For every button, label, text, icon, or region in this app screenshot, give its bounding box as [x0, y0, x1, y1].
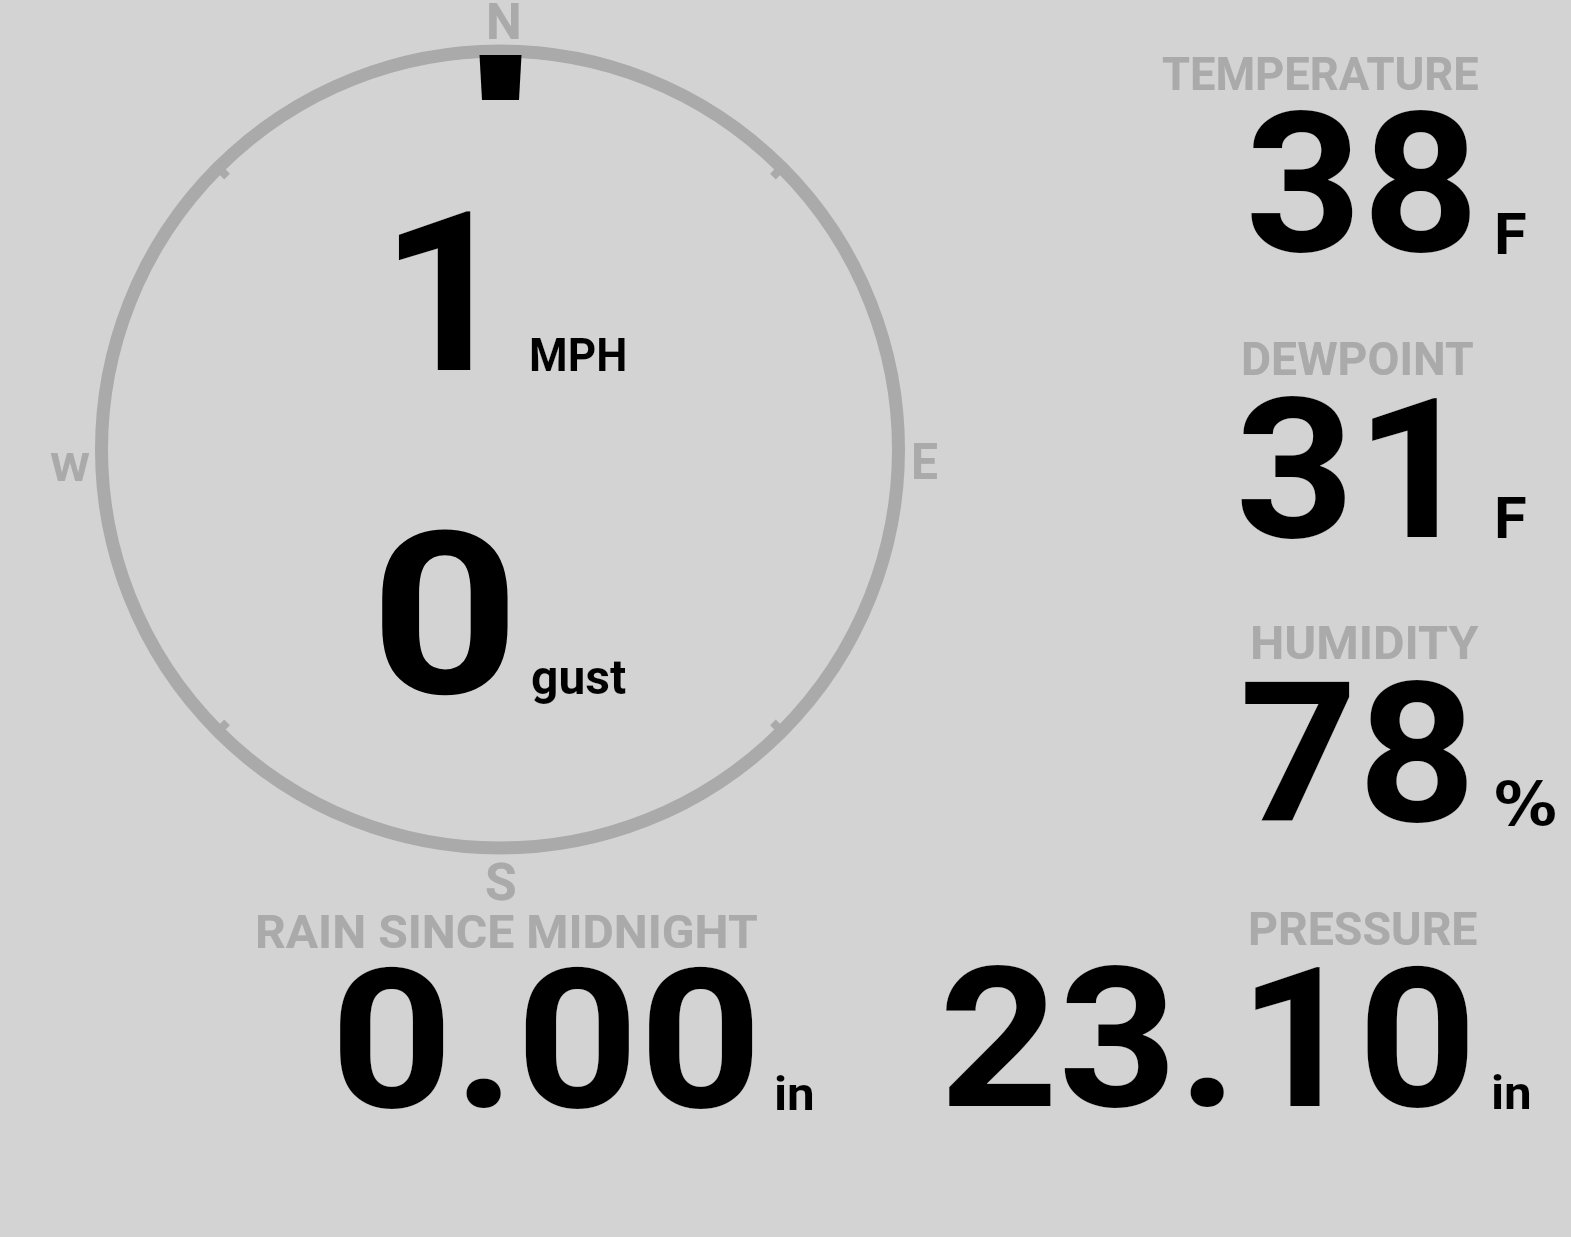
- button[interactable]: TEMPERATURE: [1145, 40, 1545, 310]
- button[interactable]: HUMIDITY: [1145, 610, 1565, 880]
- staticText: E: [911, 433, 939, 492]
- button[interactable]: Wind speed and direction: [30, 0, 970, 910]
- staticText: in: [774, 1066, 815, 1121]
- staticText: N: [486, 0, 522, 52]
- button[interactable]: PRESSURE: [900, 896, 1550, 1126]
- staticText: 0: [370, 482, 521, 748]
- staticText: %: [1494, 768, 1558, 839]
- staticText: PRESSURE: [1248, 902, 1477, 956]
- staticText: TEMPERATURE: [1162, 47, 1479, 101]
- staticText: 23.10: [939, 925, 1478, 1154]
- staticText: RAIN SINCE MIDNIGHT: [255, 905, 758, 959]
- staticText: DEWPOINT: [1241, 332, 1474, 386]
- staticText: W: [50, 446, 91, 491]
- staticText: MPH: [529, 328, 628, 382]
- staticText: gust: [531, 649, 627, 705]
- staticText: F: [1494, 200, 1527, 268]
- staticText: HUMIDITY: [1250, 616, 1479, 670]
- staticText: S: [485, 852, 517, 913]
- staticText: in: [1491, 1065, 1532, 1120]
- button[interactable]: DEWPOINT: [1145, 326, 1545, 596]
- staticText: 0.00: [330, 926, 763, 1155]
- button[interactable]: RAIN SINCE MIDNIGHT: [240, 896, 830, 1126]
- staticText: 38: [1245, 70, 1480, 299]
- staticText: 31: [1235, 356, 1475, 585]
- staticText: 1: [380, 164, 513, 424]
- staticText: 78: [1239, 640, 1477, 869]
- staticText: F: [1494, 484, 1527, 552]
